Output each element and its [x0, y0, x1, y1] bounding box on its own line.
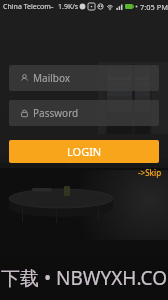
staticText: 下载 • NBWYXH.CO: [1, 265, 168, 291]
staticText: China Telecom: [3, 2, 51, 12]
button[interactable]: Password: [9, 100, 159, 126]
button[interactable]: Mailbox: [9, 65, 159, 91]
staticText: LOGIN: [67, 144, 102, 159]
staticText: –: [50, 2, 54, 12]
staticText: Password: [33, 106, 79, 120]
staticText: Mailbox: [33, 71, 71, 85]
button[interactable]: ->Skip: [134, 164, 166, 181]
staticText: 7:05 PM: [140, 2, 168, 12]
staticText: ->Skip: [138, 167, 162, 178]
button[interactable]: LOGIN: [9, 140, 159, 163]
staticText: 1.9K/s: [58, 2, 79, 12]
